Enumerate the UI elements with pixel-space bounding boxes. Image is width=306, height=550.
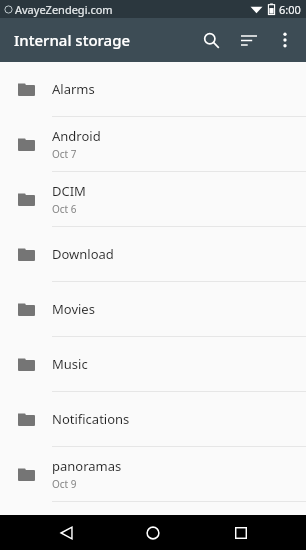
staticText: Internal storage bbox=[14, 30, 131, 50]
staticText: Alarms bbox=[52, 80, 95, 98]
button[interactable]: Music bbox=[0, 337, 306, 392]
button[interactable]: Android bbox=[0, 117, 306, 172]
button[interactable]: Download bbox=[0, 227, 306, 282]
staticText: DCIM bbox=[52, 182, 86, 200]
button[interactable]: Movies bbox=[0, 282, 306, 337]
staticText: panoramas bbox=[52, 457, 122, 475]
button[interactable]: Alarms bbox=[0, 62, 306, 117]
button[interactable]: Notifications bbox=[0, 392, 306, 447]
staticText: Music bbox=[52, 355, 88, 373]
staticText: Movies bbox=[52, 300, 95, 318]
staticText: Download bbox=[52, 245, 114, 263]
button[interactable]: panoramas bbox=[0, 447, 306, 502]
button[interactable]: More options bbox=[268, 23, 302, 57]
staticText: Android bbox=[52, 127, 101, 145]
staticText: 6:00 bbox=[279, 2, 301, 17]
button[interactable]: Recent apps bbox=[219, 515, 263, 550]
staticText: AvayeZendegi.com bbox=[15, 2, 113, 17]
button[interactable]: Sort bbox=[230, 21, 268, 59]
staticText: Oct 7 bbox=[52, 147, 77, 161]
button[interactable]: Back bbox=[44, 515, 88, 550]
button[interactable]: DCIM bbox=[0, 172, 306, 227]
staticText: Oct 9 bbox=[52, 477, 77, 491]
button[interactable]: Home bbox=[131, 515, 175, 550]
button[interactable]: Search bbox=[192, 21, 230, 59]
staticText: Notifications bbox=[52, 410, 130, 428]
staticText: Oct 6 bbox=[52, 202, 77, 216]
